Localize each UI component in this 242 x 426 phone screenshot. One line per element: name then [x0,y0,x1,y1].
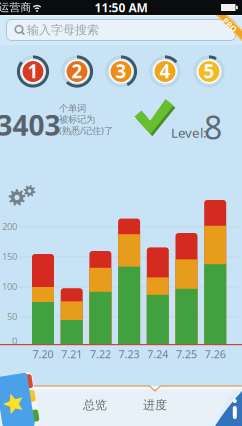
button[interactable]: 应用 [0,373,39,426]
staticText: 200 [2,220,17,233]
staticText: 8 [204,106,222,148]
staticText: 4 [159,59,170,83]
staticText: 7.25 [176,347,197,361]
staticText: 进度 [143,398,167,412]
staticText: 1 [27,59,38,83]
staticText: 被标记为 [59,114,95,125]
button[interactable]: 输入字母搜索 [6,19,236,41]
button[interactable]: 4 [147,53,183,89]
staticText: 100 [2,280,17,293]
staticText: 7.23 [119,347,140,361]
button[interactable]: 设置 [1,179,41,213]
staticText: 3 [115,59,126,83]
staticText: 总览 [83,398,107,412]
staticText: 7.21 [61,347,82,361]
staticText: 0 [12,335,17,347]
staticText: PRO [222,19,238,30]
button[interactable]: 总览 [65,388,125,422]
staticText: 输入字母搜索 [27,23,99,37]
staticText: 7.22 [90,347,111,361]
staticText: 7.24 [147,347,168,361]
staticText: 3403 [0,106,60,144]
button[interactable]: 5 [191,53,227,89]
staticText: (熟悉/记住)了 [59,124,113,137]
staticText: 150 [2,250,17,263]
staticText: 11:50 AM [94,0,147,15]
button[interactable]: 信息 [208,386,242,426]
staticText: 5 [203,59,214,83]
button[interactable]: 进度 [125,388,185,422]
button[interactable]: 2 [59,53,95,89]
staticText: 7.20 [32,347,53,361]
staticText: 运营商 [0,1,31,14]
button[interactable]: PRO 升级 [208,15,242,42]
staticText: Level: [171,124,207,141]
button[interactable]: 1 [15,53,51,89]
staticText: 2 [71,59,82,83]
staticText: 个单词 [59,103,86,114]
button[interactable]: 3 [103,53,139,89]
staticText: 7.26 [205,347,226,361]
staticText: 50 [7,310,17,323]
